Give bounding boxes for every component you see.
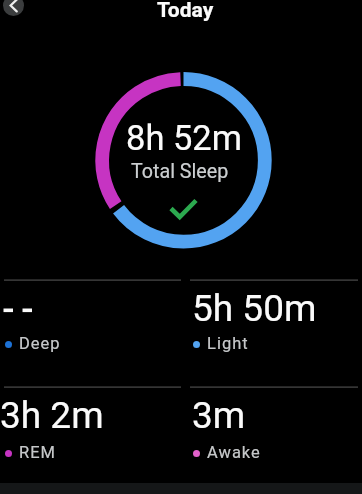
- staticText: Deep: [19, 334, 61, 353]
- staticText: 3h 2m: [0, 394, 104, 437]
- staticText: Total Sleep: [131, 160, 229, 183]
- staticText: 3m: [192, 394, 246, 437]
- staticText: Today: [157, 0, 214, 23]
- staticText: Light: [207, 334, 249, 353]
- staticText: 8h 52m: [126, 118, 242, 158]
- staticText: 5h 50m: [192, 287, 317, 330]
- staticText: Awake: [207, 443, 261, 462]
- staticText: REM: [19, 443, 56, 462]
- button[interactable]: [3, 0, 24, 16]
